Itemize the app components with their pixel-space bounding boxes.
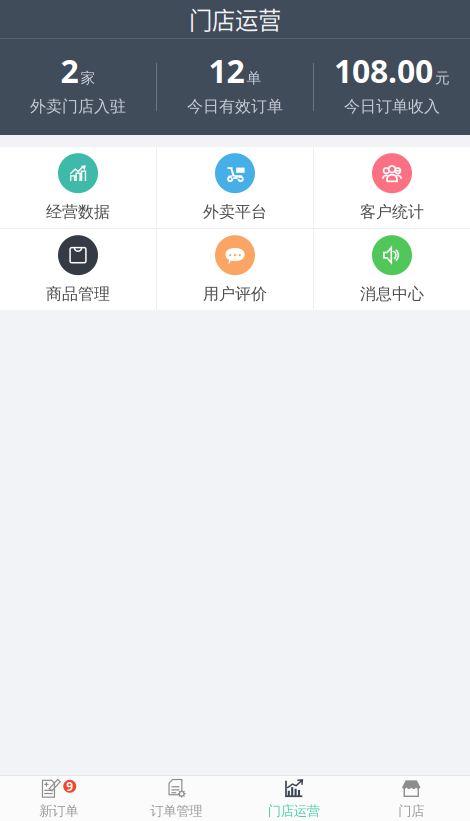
staticText: 9 — [66, 778, 73, 794]
button[interactable]: 订单管理 — [117, 776, 235, 821]
staticText: 108.00 — [334, 49, 433, 92]
staticText: 12 — [208, 49, 244, 92]
button[interactable]: 客户统计 — [314, 147, 470, 228]
staticText: 今日有效订单 — [187, 97, 283, 116]
staticText: 客户统计 — [360, 202, 424, 222]
staticText: 订单管理 — [150, 803, 202, 819]
button[interactable]: 消息中心 — [314, 229, 470, 310]
button[interactable]: 外卖平台 — [157, 147, 313, 228]
staticText: 家 — [80, 69, 95, 87]
button[interactable]: 门店 — [352, 776, 470, 821]
staticText: 门店运营 — [189, 2, 281, 36]
button[interactable]: 用户评价 — [157, 229, 313, 310]
staticText: 单 — [246, 69, 261, 87]
staticText: 新订单 — [39, 803, 78, 819]
staticText: 消息中心 — [360, 284, 424, 304]
staticText: 2 — [60, 49, 78, 92]
staticText: 经营数据 — [46, 202, 110, 222]
button[interactable]: 商品管理 — [0, 229, 156, 310]
staticText: 外卖平台 — [203, 202, 267, 222]
button[interactable]: 9 — [0, 776, 117, 821]
staticText: 今日订单收入 — [344, 97, 440, 116]
staticText: 门店 — [398, 803, 424, 819]
staticText: 元 — [435, 69, 450, 87]
button[interactable]: 门店运营 — [235, 776, 352, 821]
staticText: 外卖门店入驻 — [30, 97, 126, 116]
button[interactable]: 经营数据 — [0, 147, 156, 228]
staticText: 门店运营 — [268, 803, 320, 819]
staticText: 商品管理 — [46, 284, 110, 304]
staticText: 用户评价 — [203, 284, 267, 304]
